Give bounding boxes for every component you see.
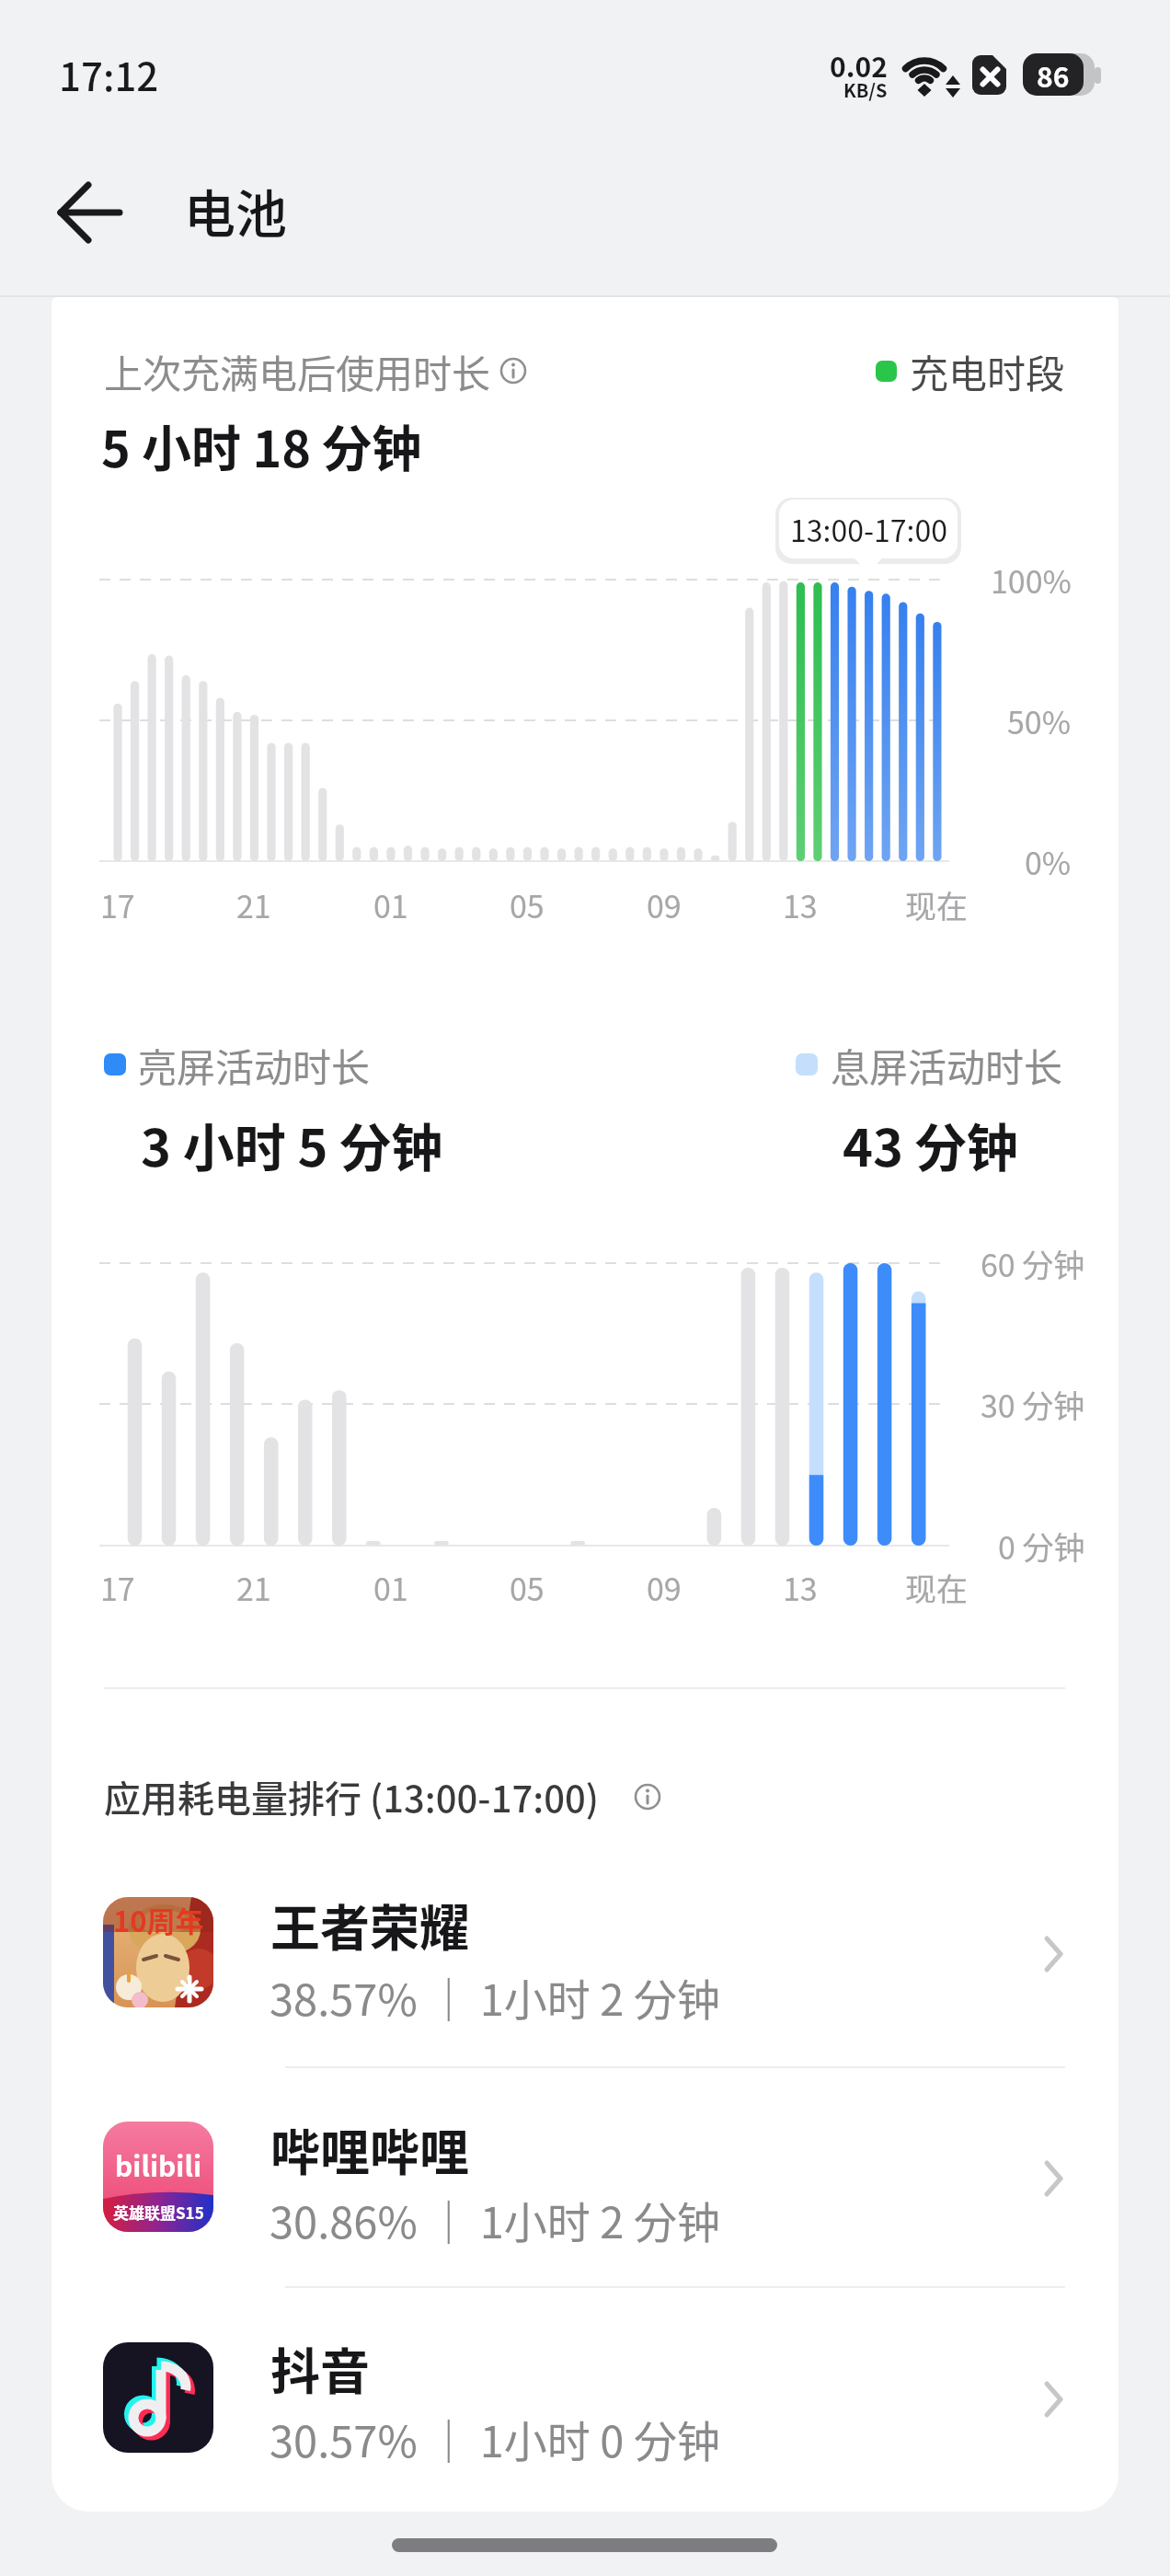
staticText: 100% (991, 558, 1072, 603)
staticText: KB/S (843, 76, 888, 103)
staticText: 3 小时 5 分钟 (141, 1107, 443, 1181)
button[interactable] (52, 2067, 1118, 2287)
staticText: 0% (1025, 839, 1072, 884)
staticText: 现在 (905, 882, 968, 927)
staticText: 电池 (184, 173, 287, 247)
staticText: 现在 (905, 1565, 968, 1610)
button[interactable] (44, 171, 136, 254)
staticText: 17 (100, 1565, 135, 1610)
staticText: 30.86% ｜ 1小时 2 分钟 (270, 2188, 720, 2250)
staticText: 17:12 (59, 46, 159, 102)
button[interactable] (52, 1860, 1118, 2067)
staticText: 王者荣耀 (270, 1889, 469, 1961)
staticText: 充电时段 (910, 343, 1065, 399)
staticText: 01 (373, 882, 408, 927)
staticText: 13 (783, 1565, 818, 1610)
staticText: 哔哩哔哩 (270, 2113, 469, 2185)
staticText: 60 分钟 (981, 1241, 1085, 1286)
staticText: 09 (647, 1565, 682, 1610)
staticText: 30 分钟 (981, 1382, 1085, 1427)
staticText: 息屏活动时长 (831, 1037, 1063, 1093)
staticText: bilibili (115, 2145, 202, 2184)
staticText: 0 分钟 (998, 1524, 1085, 1569)
staticText: 0.02 (830, 45, 888, 85)
staticText: 21 (236, 882, 271, 927)
staticText: 应用耗电量排行 (13:00-17:00) (104, 1770, 599, 1823)
staticText: 上次充满电后使用时长 (104, 343, 491, 399)
staticText: 38.57% ｜ 1小时 2 分钟 (270, 1965, 720, 2028)
staticText: 10周年 (113, 1899, 204, 1940)
staticText: 01 (373, 1565, 408, 1610)
staticText: 30.57% ｜ 1小时 0 分钟 (270, 2407, 720, 2469)
staticText: 抖音 (270, 2332, 370, 2404)
staticText: 05 (510, 882, 545, 927)
staticText: 13:00-17:00 (790, 508, 947, 550)
staticText: 09 (647, 882, 682, 927)
staticText: 13 (783, 882, 818, 927)
staticText: 5 小时 18 分钟 (101, 409, 422, 481)
staticText: 50% (1007, 698, 1072, 743)
staticText: 亮屏活动时长 (138, 1037, 371, 1093)
staticText: 43 分钟 (843, 1107, 1018, 1181)
button[interactable] (52, 2287, 1118, 2503)
staticText: 86 (1037, 55, 1070, 95)
staticText: 17 (100, 882, 135, 927)
staticText: 05 (510, 1565, 545, 1610)
staticText: 英雄联盟S15 (113, 2201, 204, 2224)
staticText: 21 (236, 1565, 271, 1610)
